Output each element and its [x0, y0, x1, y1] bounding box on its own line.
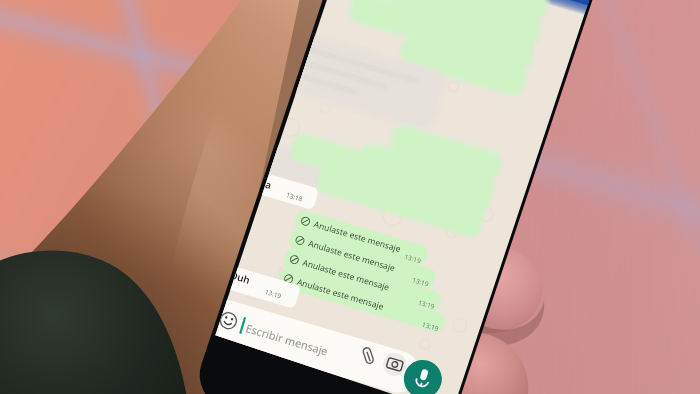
button[interactable]: Duh 13:19 — [226, 268, 302, 294]
button[interactable]: Anulaste este mensaje 13:19 — [290, 226, 450, 256]
button[interactable]: Anulaste este mensaje 13:19 — [284, 248, 452, 278]
button[interactable]: Emoji — [225, 303, 255, 333]
button[interactable]: Anulaste este mensaje 13:19 — [278, 270, 454, 300]
button[interactable]: Send voice message — [405, 366, 447, 394]
button[interactable]: Va 13:18 — [260, 182, 324, 206]
button[interactable]: Camera — [379, 360, 411, 392]
button[interactable]: Attach — [353, 348, 385, 380]
button[interactable]: Message input field: Escribir mensaje — [214, 288, 422, 350]
button[interactable]: Anulaste este mensaje 13:19 — [297, 205, 447, 235]
